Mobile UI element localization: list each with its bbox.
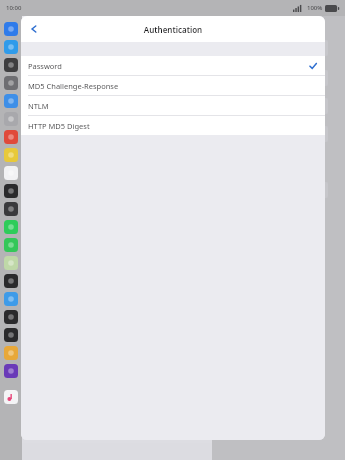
button[interactable]: App 8 — [4, 166, 18, 180]
staticText: Password — [28, 61, 62, 71]
button[interactable]: App 14 — [4, 274, 18, 288]
button[interactable]: MD5 Challenge-Response — [21, 76, 325, 95]
button[interactable]: App 12 — [4, 238, 18, 252]
button[interactable]: App 10 — [4, 202, 18, 216]
button[interactable]: App 1 — [4, 40, 18, 54]
button[interactable]: App 4 — [4, 94, 18, 108]
button[interactable]: App 3 — [4, 76, 18, 90]
button[interactable]: HTTP MD5 Digest — [21, 116, 325, 135]
staticText: Authentication — [21, 24, 325, 35]
button[interactable]: App 0 — [4, 22, 18, 36]
button[interactable]: Back — [21, 16, 47, 42]
button[interactable]: App 16 — [4, 310, 18, 324]
button[interactable]: App 6 — [4, 130, 18, 144]
button[interactable]: Music — [4, 390, 18, 404]
button[interactable]: App 17 — [4, 328, 18, 342]
button[interactable]: NTLM — [21, 96, 325, 115]
button[interactable]: App 2 — [4, 58, 18, 72]
staticText: HTTP MD5 Digest — [28, 121, 90, 131]
button[interactable]: Password — [21, 56, 325, 75]
staticText: 100% — [307, 4, 323, 12]
button[interactable]: App 13 — [4, 256, 18, 270]
staticText: NTLM — [28, 101, 49, 111]
button[interactable]: App 7 — [4, 148, 18, 162]
button[interactable]: App 5 — [4, 112, 18, 126]
staticText: MD5 Challenge-Response — [28, 81, 119, 91]
button[interactable]: App 11 — [4, 220, 18, 234]
button[interactable]: App 15 — [4, 292, 18, 306]
staticText: 10:00 — [6, 4, 22, 12]
button[interactable]: App 18 — [4, 346, 18, 360]
button[interactable]: App 9 — [4, 184, 18, 198]
button[interactable]: App 19 — [4, 364, 18, 378]
